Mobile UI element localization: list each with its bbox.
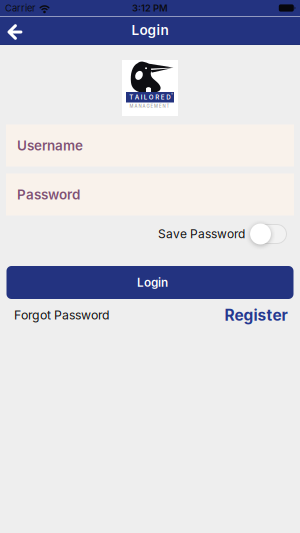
staticText: Username <box>17 138 83 153</box>
staticText: Login <box>131 22 168 38</box>
button[interactable]: Save Password <box>250 223 287 245</box>
button[interactable]: Register <box>224 306 287 324</box>
staticText: Password <box>17 187 80 202</box>
button[interactable]: Forgot Password <box>14 308 110 322</box>
staticText: T A I L O R E D <box>108 90 191 104</box>
button[interactable]: Password <box>6 173 294 215</box>
button[interactable]: Login <box>6 266 293 299</box>
staticText: 3:12 PM <box>132 2 168 13</box>
button[interactable]: Back <box>0 15 34 45</box>
button[interactable]: Username <box>6 124 294 166</box>
staticText: Carrier <box>5 2 36 13</box>
staticText: M A N A G E M E N T <box>109 101 189 111</box>
staticText: Register <box>224 306 287 324</box>
staticText: Login <box>137 276 168 289</box>
staticText: Forgot Password <box>14 308 110 322</box>
staticText: Save Password <box>158 227 245 241</box>
